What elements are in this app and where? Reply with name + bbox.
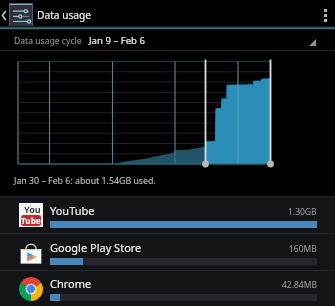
staticText: Data usage cycle <box>14 35 82 47</box>
button[interactable]: Chrome <box>0 271 335 306</box>
staticText: Tube <box>21 215 41 226</box>
button[interactable]: You <box>0 197 335 233</box>
button[interactable]: Navigate up <box>0 0 335 30</box>
staticText: Jan 9 – Feb 6 <box>89 34 145 47</box>
staticText: 42.84MB <box>282 279 317 291</box>
button[interactable]: Data usage cycle <box>0 30 335 51</box>
staticText: You <box>24 203 41 215</box>
button[interactable]: More options <box>315 0 335 30</box>
staticText: Chrome <box>50 276 92 291</box>
staticText: 160MB <box>289 243 317 255</box>
staticText: Data usage <box>37 8 92 22</box>
staticText: YouTube <box>50 203 95 218</box>
staticText: Google Play Store <box>50 240 142 255</box>
staticText: 1.30GB <box>288 206 317 218</box>
button[interactable]: Google Play Store <box>0 234 335 270</box>
staticText: Jan 30 – Feb 6: about 1.54GB used. <box>14 175 156 187</box>
